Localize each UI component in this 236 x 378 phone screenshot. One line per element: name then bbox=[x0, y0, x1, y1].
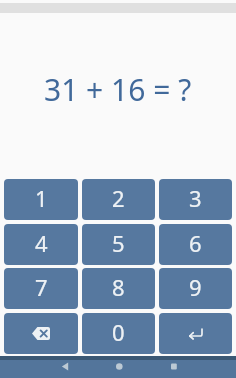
button[interactable]: 1 bbox=[4, 179, 78, 220]
button[interactable] bbox=[37, 360, 91, 378]
staticText: 5 bbox=[112, 228, 125, 258]
button[interactable]: 4 bbox=[4, 224, 78, 265]
staticText: 7 bbox=[35, 272, 48, 302]
staticText: 31 + 16 = ? bbox=[44, 69, 192, 110]
button[interactable]: 2 bbox=[82, 179, 155, 220]
button[interactable] bbox=[4, 313, 78, 354]
button[interactable]: 7 bbox=[4, 268, 78, 309]
button[interactable]: 3 bbox=[159, 179, 232, 220]
button[interactable]: 9 bbox=[159, 268, 232, 309]
button[interactable]: 6 bbox=[159, 224, 232, 265]
button[interactable] bbox=[91, 360, 145, 378]
button[interactable]: 5 bbox=[82, 224, 155, 265]
staticText: 4 bbox=[35, 228, 48, 258]
button[interactable]: 8 bbox=[82, 268, 155, 309]
staticText: 0 bbox=[112, 317, 125, 347]
staticText: 6 bbox=[189, 228, 202, 258]
button[interactable]: 0 bbox=[82, 313, 155, 354]
staticText: 1 bbox=[35, 183, 48, 213]
staticText: 9 bbox=[189, 272, 202, 302]
staticText: 8 bbox=[112, 272, 125, 302]
button[interactable] bbox=[159, 313, 232, 354]
staticText: 3 bbox=[189, 183, 202, 213]
button[interactable] bbox=[145, 360, 199, 378]
staticText: 2 bbox=[112, 183, 125, 213]
